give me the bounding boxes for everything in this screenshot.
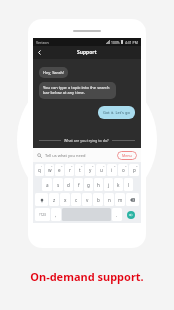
- staticText: 2: [51, 164, 53, 167]
- button[interactable]: u: [96, 164, 106, 176]
- staticText: n: [108, 197, 111, 203]
- button[interactable]: Backspace: [126, 193, 139, 206]
- staticText: Got it. Let's go: [103, 110, 130, 115]
- staticText: ,: [55, 212, 57, 218]
- button[interactable]: x: [60, 193, 70, 206]
- staticText: Support: [77, 49, 97, 56]
- button[interactable]: Menu: [117, 151, 137, 160]
- button[interactable]: b: [93, 193, 103, 206]
- button[interactable]: z: [49, 193, 59, 206]
- button[interactable]: Shift: [35, 193, 48, 206]
- staticText: 0: [136, 164, 138, 167]
- button[interactable]: Hey, Sarah!: [39, 67, 68, 78]
- staticText: 6: [92, 164, 94, 167]
- staticText: i: [111, 167, 113, 173]
- button[interactable]: k: [114, 178, 123, 191]
- button[interactable]: t: [75, 164, 84, 176]
- button[interactable]: c: [71, 193, 81, 206]
- staticText: Hey, Sarah!: [43, 70, 64, 75]
- button[interactable]: w: [45, 164, 54, 176]
- staticText: r: [69, 167, 71, 173]
- staticText: w: [48, 167, 52, 173]
- button[interactable]: ?123: [35, 208, 50, 221]
- button[interactable]: i: [107, 164, 117, 176]
- staticText: .: [116, 212, 118, 218]
- button[interactable]: o: [118, 164, 128, 176]
- staticText: z: [53, 197, 56, 203]
- button[interactable]: j: [104, 178, 113, 191]
- button[interactable]: .: [112, 208, 122, 221]
- staticText: Menu: [122, 153, 132, 158]
- button[interactable]: Tell us what you need: [37, 153, 117, 158]
- staticText: 8: [114, 164, 116, 167]
- staticText: q: [38, 167, 41, 173]
- button[interactable]: Got it. Let's go: [98, 106, 135, 119]
- staticText: v: [86, 197, 89, 203]
- staticText: a: [46, 182, 49, 188]
- staticText: 5: [81, 164, 83, 167]
- button[interactable]: p: [129, 164, 139, 176]
- staticText: x: [64, 197, 67, 203]
- staticText: s: [57, 182, 60, 188]
- staticText: On-demand support.: [30, 269, 144, 284]
- staticText: 7: [103, 164, 105, 167]
- staticText: b: [97, 197, 100, 203]
- button[interactable]: You can type a topic into the search bar…: [39, 82, 116, 99]
- staticText: e: [58, 167, 61, 173]
- staticText: p: [133, 167, 136, 173]
- staticText: 1: [41, 164, 43, 167]
- staticText: 9: [125, 164, 127, 167]
- staticText: h: [97, 182, 100, 188]
- staticText: o: [122, 167, 125, 173]
- staticText: k: [117, 182, 120, 188]
- button[interactable]: n: [104, 193, 114, 206]
- staticText: u: [100, 167, 103, 173]
- button[interactable]: r: [65, 164, 74, 176]
- button[interactable]: ,: [51, 208, 61, 221]
- staticText: d: [67, 182, 70, 188]
- staticText: ?123: [39, 213, 46, 217]
- staticText: Tell us what you need: [45, 153, 86, 158]
- button[interactable]: e: [55, 164, 64, 176]
- button[interactable]: g: [84, 178, 93, 191]
- button[interactable]: h: [94, 178, 103, 191]
- staticText: m: [118, 197, 123, 203]
- staticText: 4: [71, 164, 73, 167]
- button[interactable]: s: [53, 178, 63, 191]
- staticText: g: [87, 182, 90, 188]
- staticText: c: [75, 197, 78, 203]
- button[interactable]: f: [74, 178, 83, 191]
- staticText: l: [128, 182, 130, 188]
- staticText: You can type a topic into the search bar…: [43, 85, 110, 96]
- button[interactable]: Enter: [123, 208, 139, 221]
- staticText: 100%: [111, 40, 120, 45]
- button[interactable]: Back: [34, 47, 45, 58]
- staticText: What are you trying to do?: [64, 138, 109, 143]
- button[interactable]: v: [82, 193, 92, 206]
- button[interactable]: m: [115, 193, 125, 206]
- staticText: 3: [61, 164, 63, 167]
- button[interactable]: d: [64, 178, 73, 191]
- button[interactable]: l: [124, 178, 133, 191]
- staticText: y: [89, 167, 92, 173]
- staticText: f: [78, 182, 80, 188]
- button[interactable]: a: [42, 178, 52, 191]
- staticText: 4:31 PM: [125, 40, 138, 45]
- staticText: t: [79, 167, 81, 173]
- staticText: Verizon: [36, 40, 49, 45]
- staticText: j: [108, 182, 110, 188]
- button[interactable]: y: [85, 164, 95, 176]
- button[interactable]: q: [35, 164, 44, 176]
